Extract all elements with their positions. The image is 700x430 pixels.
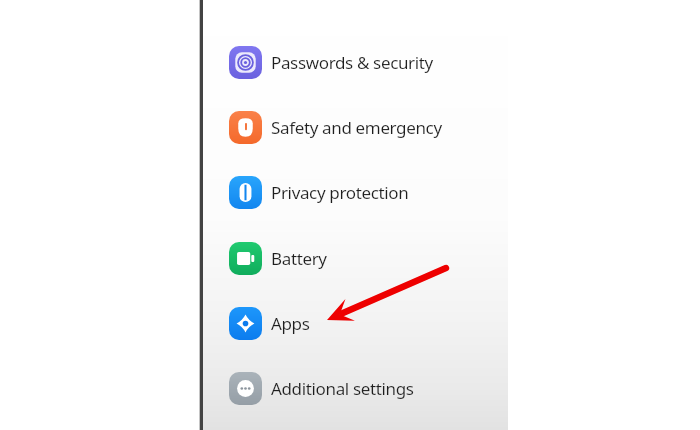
button[interactable]: Apps bbox=[203, 297, 508, 349]
staticText: Privacy protection bbox=[271, 181, 409, 204]
button[interactable]: Privacy protection bbox=[203, 166, 508, 218]
button[interactable]: Passwords & security bbox=[203, 36, 508, 88]
staticText: Battery bbox=[271, 247, 327, 270]
button[interactable]: Battery bbox=[203, 232, 508, 284]
other: Annotation arrow pointing at Apps bbox=[320, 258, 454, 332]
staticText: Additional settings bbox=[271, 377, 414, 400]
button[interactable]: Safety and emergency bbox=[203, 101, 508, 153]
staticText: Apps bbox=[271, 312, 310, 335]
staticText: Passwords & security bbox=[271, 51, 433, 74]
button[interactable]: Additional settings bbox=[203, 362, 508, 414]
staticText: Safety and emergency bbox=[271, 116, 442, 139]
